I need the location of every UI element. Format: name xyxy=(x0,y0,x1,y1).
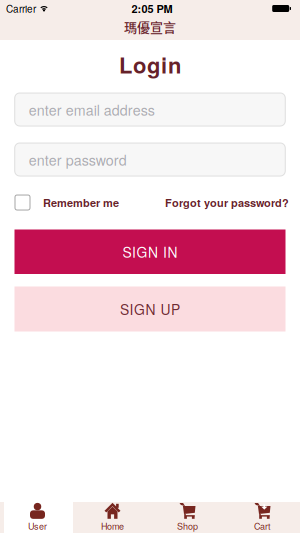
button[interactable]: SIGN IN xyxy=(14,229,285,274)
staticText: Home xyxy=(101,519,124,532)
staticText: 2:05 PM xyxy=(131,1,172,16)
button[interactable]: SIGN UP xyxy=(14,286,285,331)
staticText: User xyxy=(28,519,47,532)
button[interactable]: enter email address xyxy=(15,93,285,126)
button[interactable]: User xyxy=(0,502,75,533)
staticText: enter password xyxy=(29,149,127,170)
button[interactable]: Forgot your password? xyxy=(165,195,289,210)
button[interactable]: Remember me xyxy=(15,195,119,210)
button[interactable]: enter password xyxy=(15,143,285,176)
staticText: Forgot your password? xyxy=(165,195,289,210)
button[interactable]: Shop xyxy=(150,502,225,533)
staticText: Cart xyxy=(254,519,271,532)
button[interactable]: Home xyxy=(75,502,150,533)
staticText: Shop xyxy=(177,519,198,532)
staticText: SIGN UP xyxy=(120,299,180,319)
staticText: 瑪優宣言 xyxy=(124,17,176,36)
staticText: enter email address xyxy=(29,99,155,120)
staticText: Login xyxy=(119,49,181,80)
staticText: SIGN IN xyxy=(122,242,177,262)
staticText: Carrier xyxy=(6,1,36,16)
button[interactable]: Cart xyxy=(225,502,300,533)
staticText: Remember me xyxy=(43,195,119,210)
